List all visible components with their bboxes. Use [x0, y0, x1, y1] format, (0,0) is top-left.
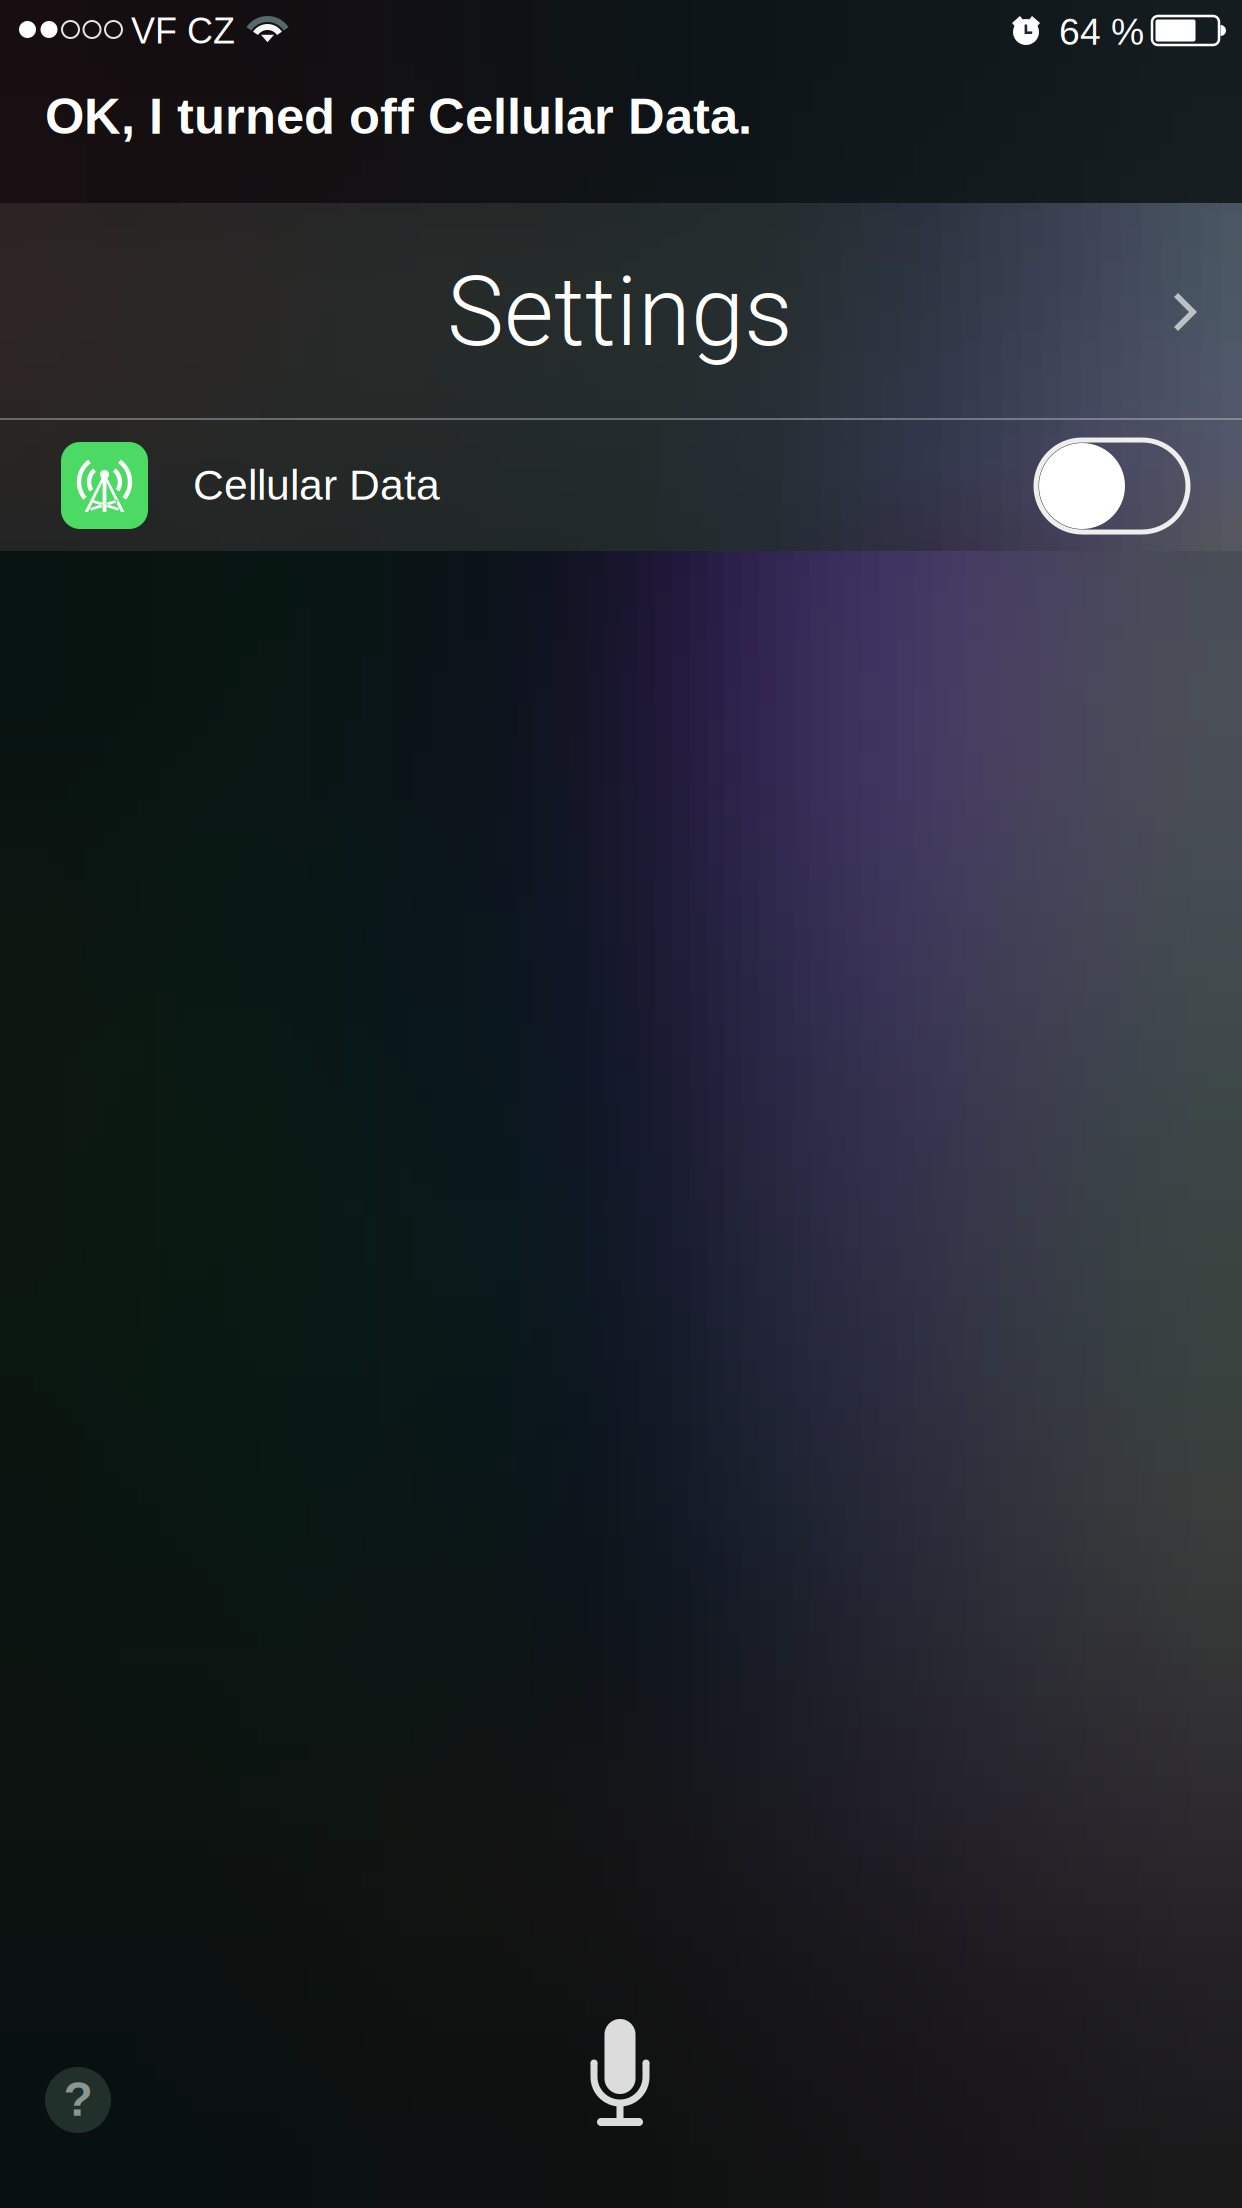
button[interactable]: Talk to Siri: [589, 2019, 651, 2126]
staticText: Cellular Data: [193, 461, 440, 509]
button[interactable]: Siri help: [45, 2067, 111, 2133]
staticText: OK, I turned off Cellular Data.: [45, 88, 752, 145]
button[interactable]: Cellular Data: [0, 420, 1242, 551]
staticText: ?: [63, 2072, 92, 2126]
button[interactable]: Settings: [0, 203, 1242, 418]
staticText: Settings: [447, 256, 793, 368]
staticText: VF CZ: [131, 11, 235, 51]
staticText: 64 %: [1059, 11, 1144, 53]
